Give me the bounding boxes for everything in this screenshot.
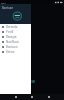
button[interactable]: Profil: [0, 29, 31, 34]
button[interactable]: Beranda: [0, 24, 31, 29]
staticText: Profil: [6, 30, 14, 34]
staticText: 9:41: [1, 1, 6, 4]
staticText: Riwayat: [6, 35, 17, 39]
button[interactable]: Riwayat: [0, 34, 31, 39]
button[interactable]: Notifikasi: [0, 39, 31, 44]
button[interactable]: Bantuan: [0, 44, 31, 49]
staticText: Bantuan: [2, 6, 14, 10]
staticText: Keluar: [6, 50, 15, 54]
staticText: Notifikasi: [6, 40, 19, 44]
staticText: Beranda: [6, 25, 18, 29]
staticText: Bantuan: [6, 45, 18, 49]
button[interactable]: Keluar: [0, 49, 31, 54]
